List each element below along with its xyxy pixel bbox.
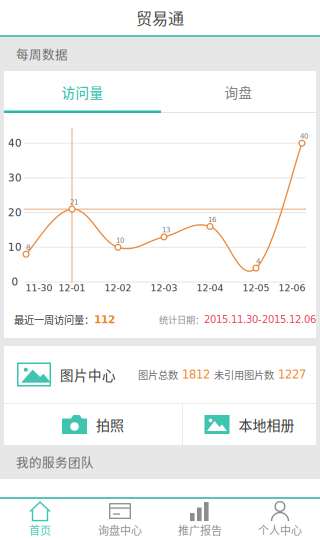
staticText: 20	[8, 207, 22, 219]
staticText: 未引用图片数	[210, 367, 274, 382]
staticText: 10	[116, 236, 124, 244]
staticText: 10	[8, 241, 22, 253]
staticText: 1812	[178, 368, 210, 381]
staticText: 图片总数	[138, 367, 178, 382]
staticText: 拍照	[96, 414, 124, 435]
staticText: 8	[26, 243, 30, 251]
button[interactable]: 拍照	[4, 404, 182, 445]
staticText: 40	[300, 132, 308, 140]
staticText: 40	[8, 137, 22, 149]
button[interactable]: 本地相册	[183, 404, 316, 445]
staticText: 13	[162, 226, 170, 234]
staticText: 访问量	[61, 82, 103, 102]
staticText: 21	[70, 198, 78, 206]
staticText: 贸易通	[136, 6, 184, 29]
staticText: 1227	[274, 368, 306, 381]
button[interactable]: 个人中心	[240, 499, 320, 540]
button[interactable]: 首页	[0, 499, 80, 540]
staticText: 询盘中心	[98, 522, 142, 538]
button[interactable]: 询盘中心	[80, 499, 160, 540]
staticText: 12-03	[150, 283, 177, 293]
button[interactable]: 推广报告	[160, 499, 240, 540]
button[interactable]: 访问量	[4, 71, 161, 113]
staticText: 30	[8, 172, 22, 184]
staticText: 首页	[29, 522, 51, 538]
staticText: 本地相册	[238, 414, 294, 435]
staticText: 12-01	[58, 283, 85, 293]
staticText: 11-30	[25, 283, 52, 293]
staticText: 询盘	[224, 82, 252, 102]
staticText: 图片中心	[60, 365, 116, 384]
staticText: 每周数据	[16, 45, 68, 63]
staticText: 12-04	[196, 283, 223, 293]
staticText: 112	[94, 313, 115, 326]
staticText: 2015.11.30-2015.12.06	[204, 314, 316, 325]
staticText: 12-02	[104, 283, 131, 293]
staticText: 0	[11, 276, 18, 288]
staticText: 我的服务团队	[16, 453, 94, 471]
staticText: 推广报告	[178, 522, 222, 538]
staticText: 12-05	[242, 283, 269, 293]
staticText: 16	[208, 215, 216, 223]
staticText: 12-06	[278, 283, 305, 293]
staticText: 4	[256, 257, 260, 265]
staticText: 最近一周访问量：	[14, 312, 94, 327]
staticText: 个人中心	[258, 522, 302, 538]
staticText: 统计日期：	[159, 313, 204, 326]
button[interactable]: 询盘	[161, 71, 316, 113]
